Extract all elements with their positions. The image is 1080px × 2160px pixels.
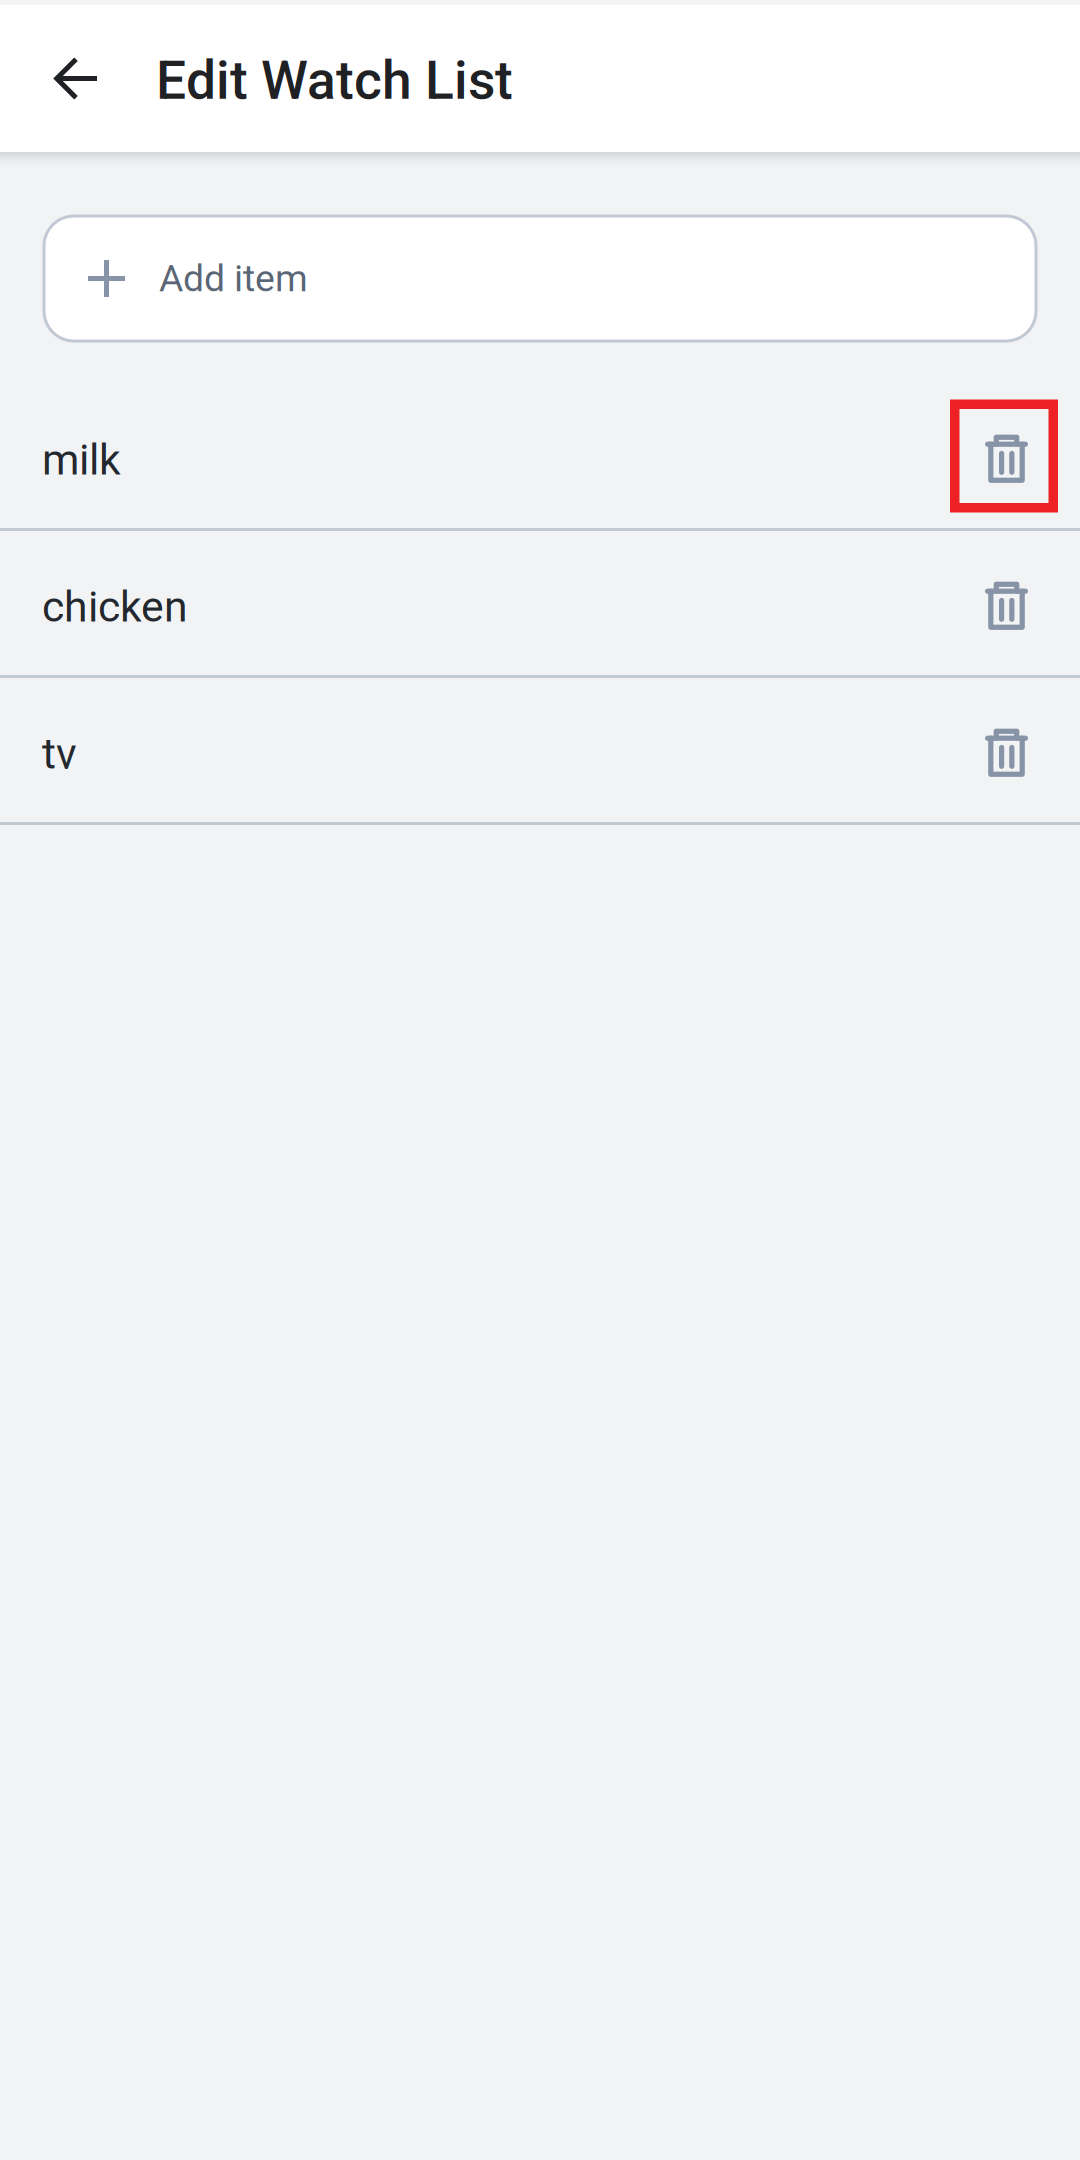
button[interactable]: Delete tv xyxy=(950,693,1058,806)
staticText: tv xyxy=(42,729,77,779)
button[interactable]: Delete chicken xyxy=(950,546,1058,659)
button[interactable]: Delete milk xyxy=(950,399,1058,512)
button[interactable]: Back xyxy=(28,30,124,126)
button[interactable]: Add item xyxy=(44,216,1036,341)
staticText: chicken xyxy=(42,582,188,632)
staticText: Add item xyxy=(159,257,308,300)
staticText: milk xyxy=(42,435,121,485)
staticText: Edit Watch List xyxy=(156,49,513,112)
